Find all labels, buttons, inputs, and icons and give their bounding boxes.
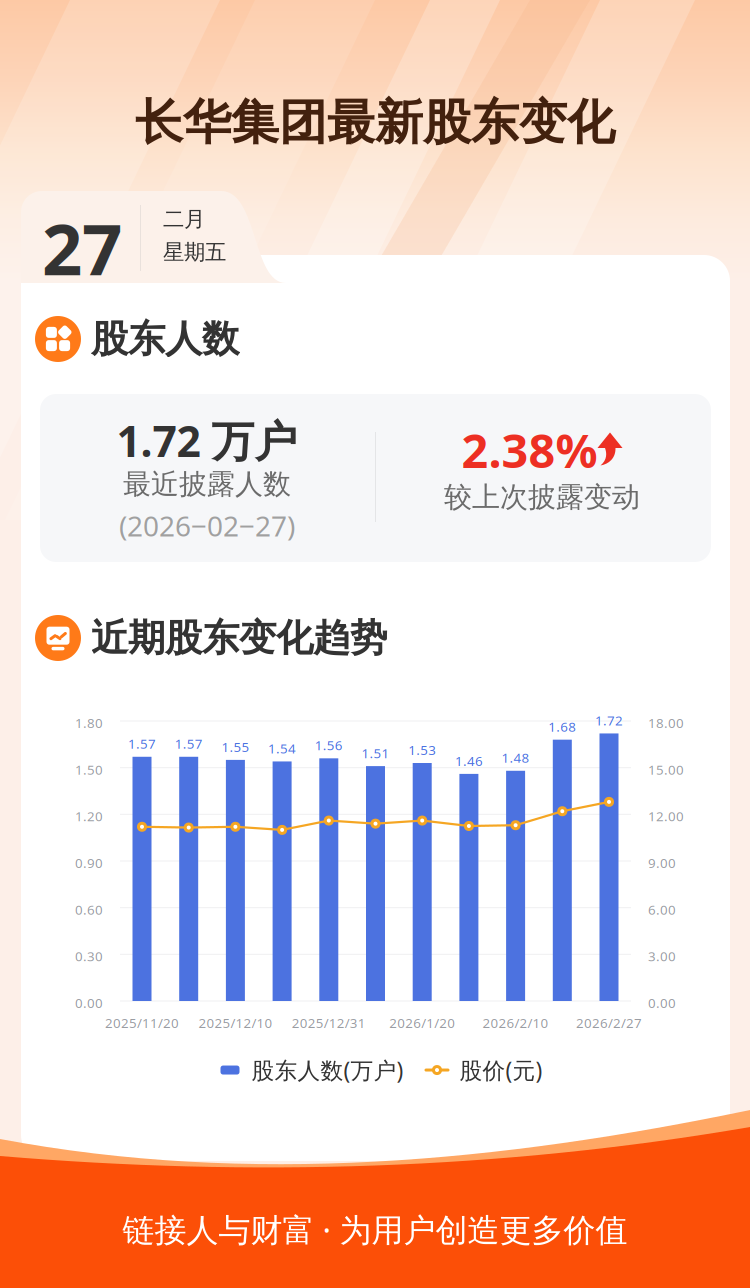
staticText: 1.50	[75, 761, 103, 778]
staticText: 1.57	[175, 735, 203, 752]
staticText: 股东人数	[91, 316, 239, 362]
staticText: 链接人与财富 · 为用户创造更多价值	[122, 1208, 627, 1250]
staticText: 2025/12/10	[198, 1014, 272, 1032]
staticText: 1.20	[75, 807, 103, 825]
staticText: 2025/11/20	[105, 1014, 179, 1032]
staticText: 1.53	[408, 741, 436, 759]
staticText: 1.80	[75, 714, 103, 732]
staticText: 1.46	[455, 752, 483, 770]
staticText: 6.00	[648, 901, 676, 918]
staticText: 27	[42, 201, 122, 295]
staticText: (2026−02−27)	[119, 507, 295, 544]
staticText: 较上次披露变动	[444, 480, 640, 514]
staticText: 最近披露人数	[123, 467, 291, 501]
staticText: 0.00	[648, 994, 676, 1012]
staticText: 15.00	[648, 761, 684, 778]
staticText: 1.72	[595, 711, 623, 729]
staticText: 0.60	[75, 901, 103, 918]
staticText: 股东人数(万户)	[251, 1055, 403, 1085]
staticText: 1.72 万户	[116, 412, 297, 469]
staticText: 1.54	[268, 739, 296, 757]
staticText: 长华集团最新股东变化	[135, 93, 615, 152]
staticText: 股价(元)	[459, 1055, 542, 1085]
staticText: 二月	[163, 206, 205, 232]
staticText: 1.55	[221, 738, 249, 756]
staticText: 0.00	[75, 994, 103, 1012]
staticText: 0.90	[75, 854, 103, 872]
staticText: 9.00	[648, 854, 676, 872]
staticText: 3.00	[648, 947, 676, 965]
staticText: 星期五	[163, 239, 226, 265]
staticText: 1.48	[502, 749, 530, 766]
staticText: 1.51	[361, 744, 389, 762]
staticText: 12.00	[648, 807, 684, 825]
staticText: 1.57	[128, 735, 156, 752]
staticText: 2026/1/20	[389, 1014, 455, 1032]
staticText: 近期股东变化趋势	[91, 615, 387, 661]
staticText: 0.30	[75, 947, 103, 965]
staticText: 1.68	[548, 718, 576, 735]
staticText: 2026/2/10	[483, 1014, 549, 1032]
staticText: 2.38%	[461, 419, 597, 481]
staticText: 2025/12/31	[292, 1014, 366, 1032]
staticText: 2026/2/27	[576, 1014, 642, 1032]
staticText: 18.00	[648, 714, 684, 732]
staticText: 1.56	[315, 736, 343, 754]
